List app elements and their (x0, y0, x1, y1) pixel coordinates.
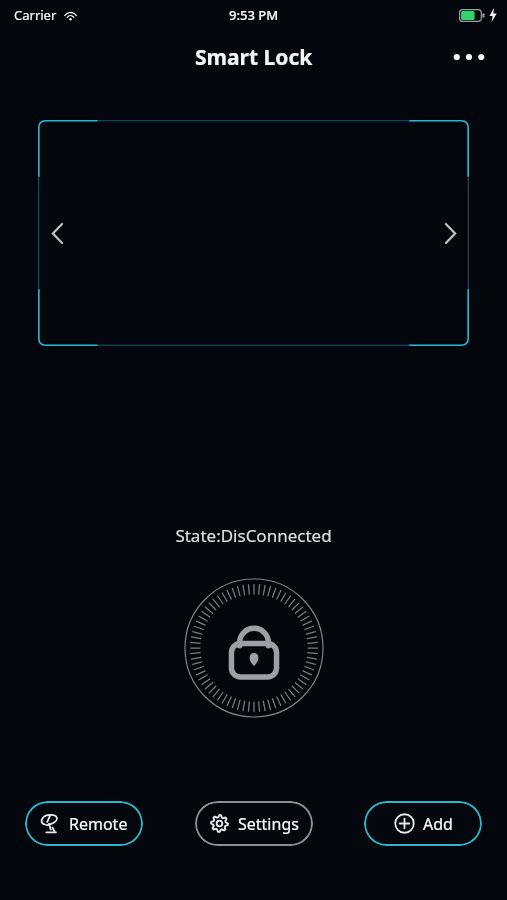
button[interactable]: Settings (195, 801, 313, 846)
staticText: Smart Lock (195, 43, 313, 72)
staticText: Carrier (14, 6, 57, 24)
staticText: Settings (238, 813, 299, 835)
staticText: Add (423, 813, 453, 835)
staticText: Remote (69, 813, 128, 835)
button[interactable]: Remote (25, 801, 143, 846)
staticText: State:DisConnected (175, 524, 332, 547)
button[interactable]: Next (433, 216, 467, 250)
button[interactable]: Previous (40, 216, 74, 250)
button[interactable]: Lock state (184, 578, 324, 718)
button[interactable]: Device preview (38, 120, 469, 346)
button[interactable]: Add (364, 801, 482, 846)
button[interactable]: More options (445, 37, 493, 77)
staticText: 9:53 PM (229, 6, 279, 24)
